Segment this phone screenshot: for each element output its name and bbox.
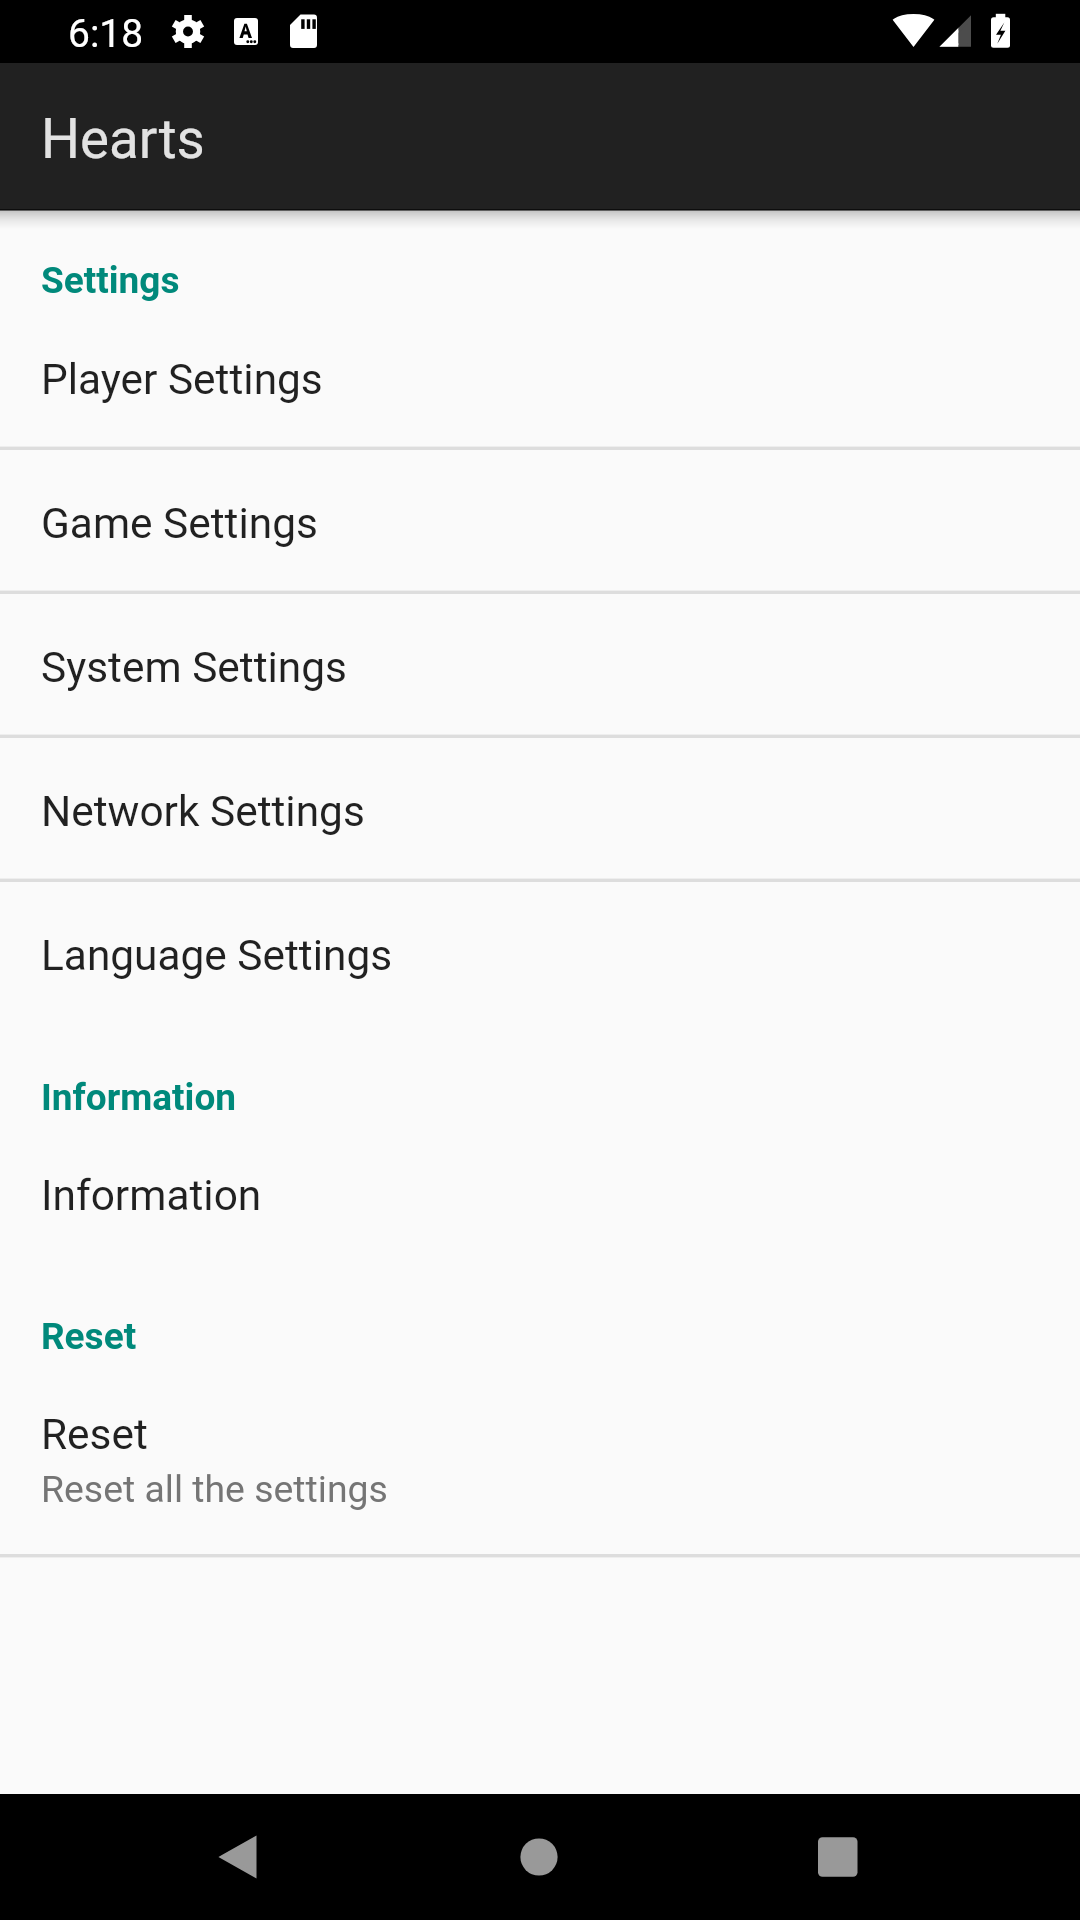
staticText: System Settings [41,643,347,693]
staticText: 6:18 [68,11,144,57]
staticText: Reset [41,1410,148,1460]
button[interactable]: System Settings [0,592,1080,736]
staticText: Information [41,1171,262,1221]
button[interactable]: Home [479,1794,599,1920]
staticText: Information [41,1076,237,1119]
staticText: Reset [41,1315,137,1358]
staticText: Game Settings [41,499,318,549]
button[interactable]: Information [0,1120,1080,1264]
button[interactable]: Back [178,1794,298,1920]
staticText: Language Settings [41,931,393,981]
staticText: Network Settings [41,787,365,837]
button[interactable]: Game Settings [0,448,1080,592]
button[interactable]: Recent apps [778,1794,898,1920]
button[interactable]: Reset [0,1360,1080,1555]
button[interactable]: Language Settings [0,880,1080,1024]
staticText: Hearts [41,107,205,171]
button[interactable]: Player Settings [0,304,1080,448]
staticText: Player Settings [41,355,323,405]
staticText: Settings [41,259,180,302]
button[interactable]: Network Settings [0,736,1080,880]
staticText: Reset all the settings [41,1467,388,1511]
